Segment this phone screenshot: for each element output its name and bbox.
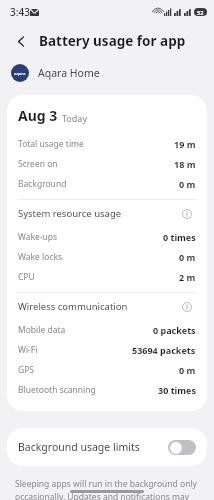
staticText: Aug 3 xyxy=(18,106,58,125)
staticText: Wireless communication xyxy=(18,300,178,313)
button[interactable]: aqara xyxy=(0,57,214,89)
staticText: Sleeping apps will run in the background… xyxy=(15,478,199,500)
staticText: Wake locks xyxy=(18,251,179,263)
staticText: Bluetooth scanning xyxy=(18,384,158,396)
staticText: 19 m xyxy=(174,138,196,150)
staticText: CPU xyxy=(18,271,179,283)
staticText: System resource usage xyxy=(18,207,178,220)
staticText: Screen on xyxy=(18,158,174,170)
button[interactable]: Back xyxy=(9,29,33,53)
staticText: Aqara Home xyxy=(38,66,100,80)
staticText: Background xyxy=(18,178,179,190)
staticText: 30 times xyxy=(158,384,196,396)
staticText: GPS xyxy=(18,364,179,376)
staticText: 18 m xyxy=(174,158,196,170)
button[interactable]: More information about Wireless communic… xyxy=(178,298,196,316)
staticText: 52 xyxy=(197,9,204,16)
staticText: 0 times xyxy=(163,231,196,243)
staticText: Total usage time xyxy=(18,138,174,150)
staticText: Today xyxy=(62,112,87,124)
staticText: 2 m xyxy=(179,271,196,283)
staticText: Background usage limits xyxy=(18,440,168,454)
button[interactable]: More information about System resource u… xyxy=(178,205,196,223)
staticText: 53694 packets xyxy=(132,344,196,356)
staticText: Battery usage for app xyxy=(39,32,186,50)
staticText: 0 packets xyxy=(153,324,196,336)
button[interactable]: Background usage limits toggle, off xyxy=(168,440,196,455)
button[interactable]: Background usage limits xyxy=(7,428,207,466)
staticText: 3:43 xyxy=(10,5,30,19)
staticText: aqara xyxy=(14,71,26,76)
staticText: Wake-ups xyxy=(18,231,163,243)
staticText: 0 m xyxy=(179,251,196,263)
staticText: 0 m xyxy=(179,364,196,376)
staticText: Mobile data xyxy=(18,324,153,336)
staticText: Wi-Fi xyxy=(18,344,132,356)
staticText: 0 m xyxy=(179,178,196,190)
